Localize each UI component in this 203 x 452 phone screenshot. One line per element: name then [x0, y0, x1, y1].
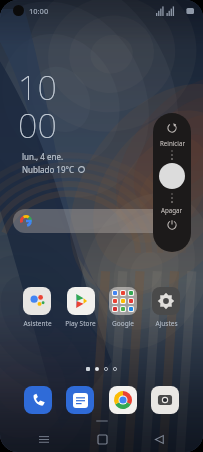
staticText: Ajustes	[155, 319, 178, 328]
staticText: Asistente	[23, 319, 52, 328]
staticText: 00	[18, 102, 57, 148]
button[interactable]: Google	[108, 286, 138, 328]
button[interactable]: Play Store	[65, 286, 96, 328]
button[interactable]: Deslizar	[159, 163, 185, 189]
staticText: 10:00	[29, 6, 49, 16]
button[interactable]: Back	[146, 426, 172, 452]
staticText: Nublado 19°C	[22, 164, 74, 175]
staticText: 10	[18, 64, 57, 110]
button[interactable]: Home	[89, 426, 115, 452]
button[interactable]: Ajustes	[151, 286, 181, 328]
staticText: Play Store	[65, 319, 96, 328]
button[interactable]: Camera	[150, 385, 180, 415]
button[interactable]: Messages	[65, 385, 95, 415]
button[interactable]: Phone	[23, 385, 53, 415]
staticText: lun., 4 ene.	[22, 151, 64, 162]
button[interactable]: Reiniciar	[164, 120, 180, 136]
button[interactable]: Asistente	[22, 286, 52, 328]
staticText: Google	[112, 319, 134, 328]
staticText: Apagar	[161, 206, 183, 214]
staticText: Reiniciar	[160, 139, 185, 147]
button[interactable]: Recent apps	[31, 426, 57, 452]
button[interactable]: Chrome	[108, 385, 138, 415]
button[interactable]: Apagar	[164, 217, 180, 233]
button[interactable]: 10	[18, 64, 81, 179]
button[interactable]	[13, 209, 190, 233]
